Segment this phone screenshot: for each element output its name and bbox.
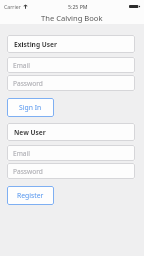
button[interactable]: Password <box>7 163 135 179</box>
staticText: Email <box>13 149 30 158</box>
staticText: Register <box>17 191 44 200</box>
button[interactable]: Existing User <box>7 35 135 53</box>
staticText: The Calving Book <box>41 13 103 23</box>
staticText: Sign In <box>19 103 42 112</box>
other: Battery full <box>129 4 140 9</box>
staticText: Email <box>13 61 30 70</box>
button[interactable]: Register <box>7 186 54 205</box>
button[interactable]: Password <box>7 75 135 91</box>
button[interactable]: Email <box>7 145 135 161</box>
staticText: Password <box>13 79 43 88</box>
other: Signal strength <box>23 4 28 9</box>
staticText: New User <box>14 128 46 137</box>
staticText: 5:25 PM <box>68 3 88 10</box>
button[interactable]: Email <box>7 57 135 73</box>
button[interactable]: New User <box>7 123 135 141</box>
staticText: Existing User <box>14 40 57 49</box>
staticText: Carrier <box>4 3 21 10</box>
staticText: Password <box>13 167 43 176</box>
button[interactable]: Sign In <box>7 98 54 117</box>
